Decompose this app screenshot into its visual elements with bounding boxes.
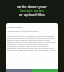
staticText: Lecture notes (7, 25, 23, 28)
staticText: write down your (0, 4, 64, 9)
staticText: lecture notes (0, 8, 64, 13)
staticText: Machine learning is a subfield of artifi… (7, 35, 57, 51)
staticText: or upload files (0, 12, 64, 17)
staticText: Introduction to Machine Learning (7, 30, 39, 33)
